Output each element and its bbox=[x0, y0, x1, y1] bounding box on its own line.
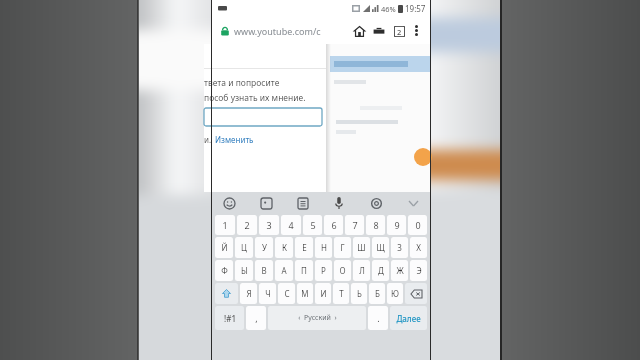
button[interactable]: 9 bbox=[387, 215, 406, 235]
staticText: Й bbox=[221, 242, 228, 253]
button[interactable]: 7 bbox=[345, 215, 364, 235]
staticText: 8 bbox=[373, 219, 379, 231]
staticText: М bbox=[301, 288, 309, 299]
button[interactable]: . bbox=[368, 306, 388, 330]
staticText: Б bbox=[375, 288, 380, 299]
button[interactable]: М bbox=[297, 283, 313, 304]
staticText: , bbox=[255, 312, 258, 324]
staticText: Д bbox=[378, 265, 384, 276]
button[interactable]: Б bbox=[369, 283, 385, 304]
staticText: Щ bbox=[376, 242, 385, 253]
staticText: Я bbox=[246, 288, 252, 299]
button[interactable]: 0 bbox=[408, 215, 427, 235]
button[interactable]: Г bbox=[334, 237, 351, 258]
staticText: 46% bbox=[381, 4, 396, 14]
button[interactable]: More options bbox=[409, 23, 424, 38]
staticText: Л bbox=[359, 265, 365, 276]
staticText: 0 bbox=[415, 219, 421, 231]
button[interactable]: Д bbox=[372, 260, 389, 281]
staticText: К bbox=[282, 242, 287, 253]
staticText: 5 bbox=[310, 219, 316, 231]
staticText: Ш bbox=[357, 242, 366, 253]
button[interactable]: More toolbar options bbox=[405, 195, 421, 211]
staticText: твета и попросите bbox=[204, 77, 280, 89]
button[interactable]: Р bbox=[315, 260, 332, 281]
button[interactable]: 5 bbox=[303, 215, 322, 235]
button[interactable]: 8 bbox=[366, 215, 385, 235]
button[interactable]: Х bbox=[410, 237, 427, 258]
button[interactable]: Clipboard bbox=[295, 195, 311, 211]
button[interactable]: Н bbox=[315, 237, 332, 258]
button[interactable]: www.youtube.com/c bbox=[234, 25, 349, 37]
button[interactable]: Home bbox=[351, 23, 367, 39]
button[interactable]: Stickers bbox=[258, 195, 274, 211]
staticText: 2 bbox=[397, 27, 402, 37]
button[interactable]: У bbox=[255, 237, 273, 258]
staticText: !#1 bbox=[224, 313, 236, 324]
button[interactable]: Site information, secure bbox=[218, 24, 231, 37]
button[interactable]: , bbox=[246, 306, 266, 330]
button[interactable]: С bbox=[278, 283, 295, 304]
button[interactable]: 2 bbox=[237, 215, 257, 235]
button[interactable]: Э bbox=[410, 260, 427, 281]
button[interactable]: Keyboard settings bbox=[368, 195, 384, 211]
staticText: 19:57 bbox=[405, 3, 426, 14]
staticText: Г bbox=[340, 242, 345, 253]
button[interactable]: Ю bbox=[387, 283, 403, 304]
button[interactable]: 1 bbox=[215, 215, 235, 235]
button[interactable]: 6 bbox=[324, 215, 343, 235]
button[interactable]: Е bbox=[295, 237, 313, 258]
button[interactable]: П bbox=[295, 260, 313, 281]
staticText: Р bbox=[321, 265, 326, 276]
staticText: Ц bbox=[241, 242, 247, 253]
button[interactable]: Switch tabs, 2 open bbox=[391, 23, 407, 39]
button[interactable]: !#1 bbox=[215, 306, 244, 330]
button[interactable]: Emoji bbox=[221, 195, 237, 211]
staticText: 3 bbox=[266, 219, 272, 231]
staticText: и. bbox=[204, 134, 212, 145]
button[interactable]: Л bbox=[353, 260, 370, 281]
staticText: И bbox=[320, 288, 327, 299]
button[interactable]: Ч bbox=[259, 283, 276, 304]
button[interactable] bbox=[204, 108, 322, 126]
staticText: 6 bbox=[331, 219, 337, 231]
button[interactable]: Щ bbox=[372, 237, 389, 258]
button[interactable]: Ы bbox=[235, 260, 253, 281]
button[interactable]: Ь bbox=[351, 283, 367, 304]
staticText: 1 bbox=[222, 219, 228, 231]
staticText: Ф bbox=[221, 265, 228, 276]
button[interactable]: К bbox=[275, 237, 293, 258]
staticText: Далее bbox=[396, 313, 421, 324]
button[interactable]: Ш bbox=[353, 237, 370, 258]
button[interactable]: Voice input bbox=[331, 195, 347, 211]
button[interactable]: Ж bbox=[391, 260, 408, 281]
staticText: 9 bbox=[394, 219, 400, 231]
button[interactable]: ‹ Русский › bbox=[268, 306, 366, 330]
button[interactable]: Shift bbox=[215, 283, 238, 304]
staticText: 2 bbox=[244, 219, 250, 231]
staticText: пособ узнать их мнение. bbox=[204, 92, 306, 104]
button[interactable]: 3 bbox=[259, 215, 279, 235]
button[interactable]: О bbox=[334, 260, 351, 281]
staticText: Ю bbox=[391, 288, 399, 299]
staticText: Э bbox=[416, 265, 422, 276]
button[interactable]: Далее bbox=[390, 306, 427, 330]
button[interactable]: З bbox=[391, 237, 408, 258]
button[interactable]: Й bbox=[215, 237, 233, 258]
button[interactable]: Ц bbox=[235, 237, 253, 258]
button[interactable]: Изменить bbox=[215, 134, 254, 145]
button[interactable]: Backspace bbox=[405, 283, 427, 304]
button[interactable]: В bbox=[255, 260, 273, 281]
staticText: Изменить bbox=[215, 134, 254, 145]
button[interactable]: Ф bbox=[215, 260, 233, 281]
button[interactable]: 4 bbox=[281, 215, 301, 235]
button[interactable]: И bbox=[315, 283, 331, 304]
button[interactable]: Т bbox=[333, 283, 349, 304]
staticText: О bbox=[339, 265, 346, 276]
staticText: Ы bbox=[241, 265, 248, 276]
button[interactable]: Я bbox=[240, 283, 257, 304]
button[interactable]: Downloads bbox=[371, 23, 387, 39]
staticText: С bbox=[284, 288, 290, 299]
button[interactable]: А bbox=[275, 260, 293, 281]
staticText: А bbox=[281, 265, 287, 276]
